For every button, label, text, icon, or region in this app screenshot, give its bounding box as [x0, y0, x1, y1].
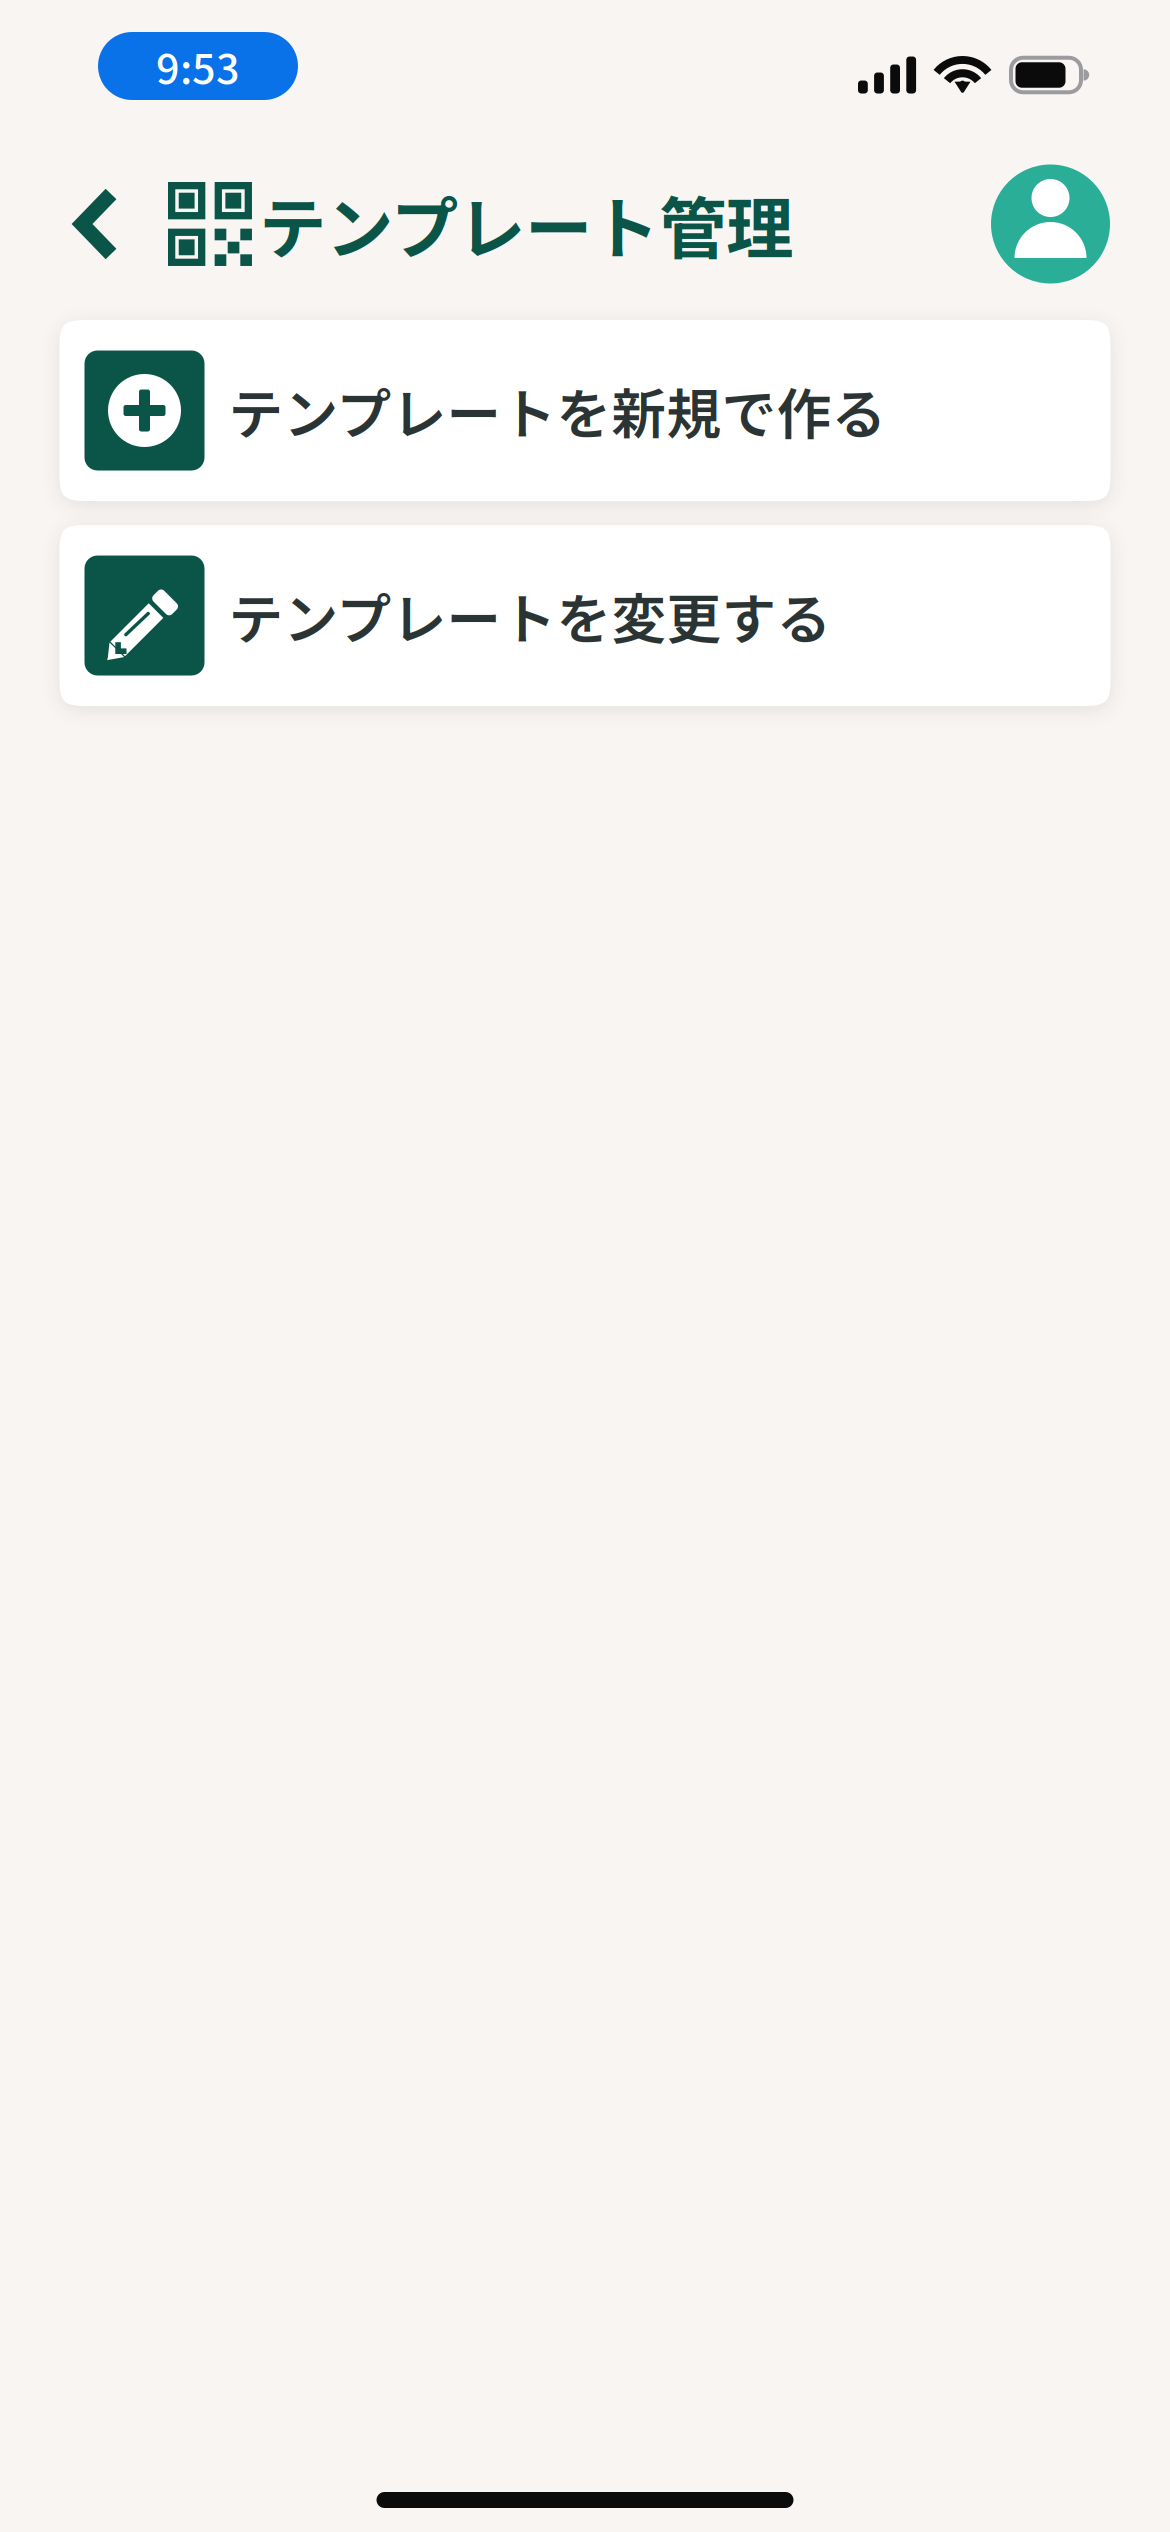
button[interactable]: テンプレートを変更する: [59, 525, 1110, 706]
button[interactable]: Back: [73, 164, 168, 284]
staticText: 9:53: [156, 36, 240, 96]
button[interactable]: テンプレートを新規で作る: [59, 320, 1110, 501]
staticText: テンプレート管理: [259, 175, 793, 273]
button[interactable]: Account: [991, 164, 1110, 283]
staticText: テンプレートを変更する: [228, 576, 831, 655]
staticText: テンプレートを新規で作る: [228, 371, 886, 450]
